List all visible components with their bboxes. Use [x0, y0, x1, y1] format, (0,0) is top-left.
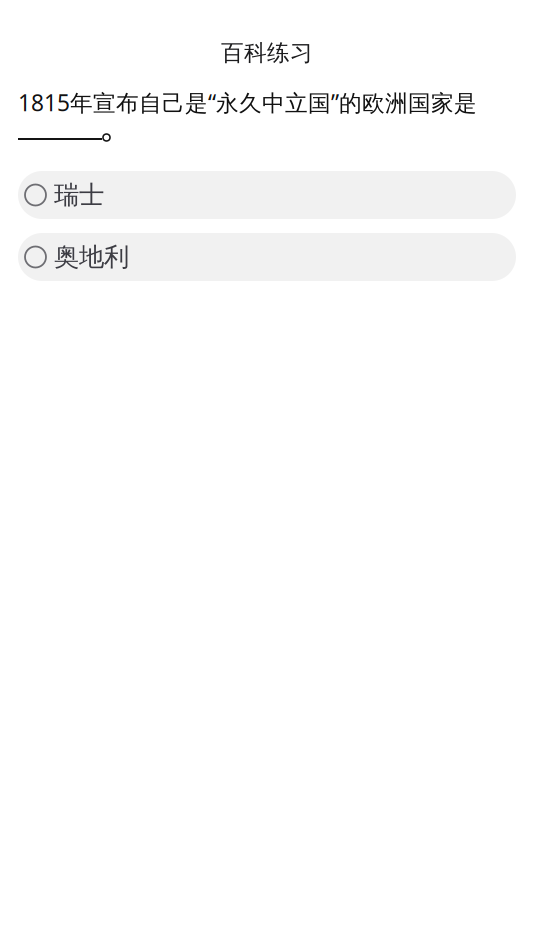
button[interactable]: 奥地利 [18, 233, 516, 281]
staticText: 百科练习 [221, 39, 313, 67]
staticText: 瑞士 [54, 179, 104, 210]
button[interactable]: 瑞士 [18, 171, 516, 219]
staticText: 1815年宣布自己是“永久中立国”的欧洲国家是 [18, 87, 477, 117]
staticText: 奥地利 [54, 241, 129, 272]
